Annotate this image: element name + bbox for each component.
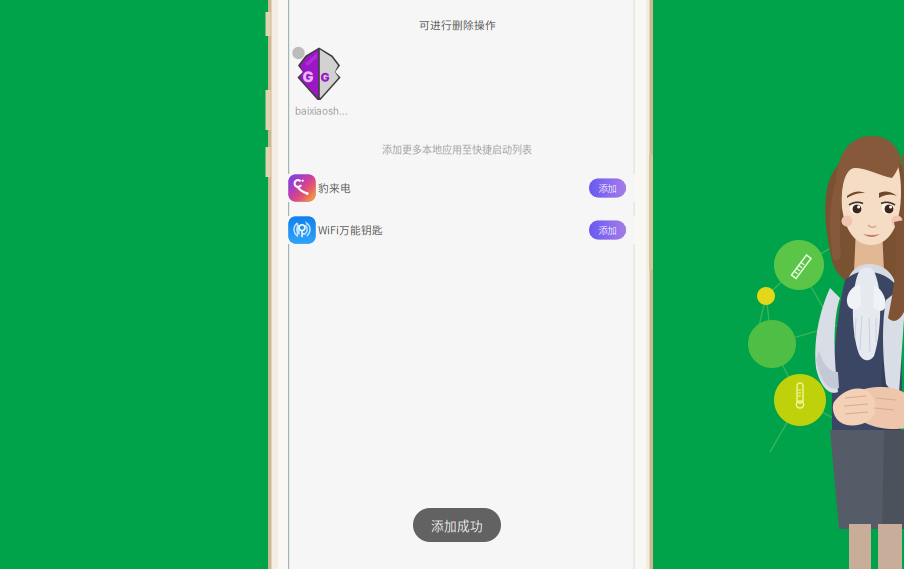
staticText: 豹来电 (318, 180, 351, 195)
button[interactable]: 豹来电 (288, 174, 635, 202)
button[interactable]: WiFi万能钥匙 (288, 216, 635, 244)
button[interactable]: 添加 (589, 220, 626, 239)
staticText: G (320, 70, 329, 84)
staticText: 添加 (598, 181, 616, 195)
staticText: 添加成功 (431, 516, 483, 534)
button[interactable]: 添加 (589, 178, 626, 197)
button[interactable]: 添加成功 (413, 508, 501, 542)
staticText: 可进行删除操作 (419, 17, 496, 32)
staticText: baixiaosh... (295, 105, 348, 117)
staticText: 添加更多本地应用至快捷启动列表 (382, 142, 532, 156)
button[interactable]: G (293, 43, 355, 119)
staticText: G (302, 68, 313, 86)
staticText: WiFi万能钥匙 (318, 222, 383, 237)
staticText: 添加 (598, 223, 616, 237)
